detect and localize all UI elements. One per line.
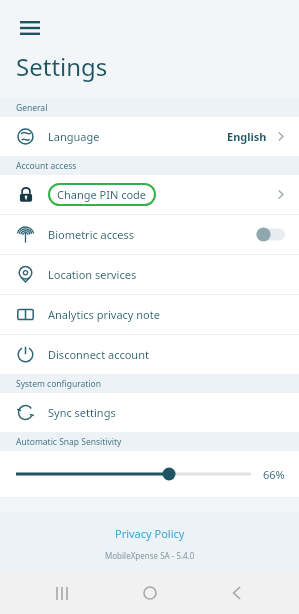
staticText: 66% xyxy=(263,467,285,482)
staticText: Change PIN code xyxy=(57,187,147,202)
button[interactable]: Back xyxy=(211,572,263,614)
button[interactable]: Sync settings xyxy=(0,393,299,432)
button[interactable]: Language xyxy=(0,117,299,156)
staticText: Settings xyxy=(16,50,108,83)
staticText: Language xyxy=(48,129,100,144)
staticText: Location services xyxy=(48,267,137,282)
staticText: General xyxy=(16,102,48,114)
staticText: System configuration xyxy=(16,378,101,390)
button[interactable]: Home xyxy=(124,572,176,614)
button[interactable]: Location services xyxy=(0,255,299,294)
button[interactable]: Analytics privacy note xyxy=(0,295,299,334)
button[interactable]: Open navigation menu xyxy=(14,12,46,44)
staticText: English xyxy=(227,129,267,144)
button[interactable]: Privacy Policy xyxy=(105,523,195,544)
button[interactable]: Snap sensitivity slider xyxy=(16,463,251,485)
button[interactable]: Change PIN code xyxy=(0,175,299,214)
staticText: Privacy Policy xyxy=(115,526,185,541)
button[interactable]: Disconnect account xyxy=(0,335,299,374)
staticText: Disconnect account xyxy=(48,347,149,362)
button[interactable]: Biometric access xyxy=(0,215,299,254)
staticText: Biometric access xyxy=(48,227,135,242)
staticText: Automatic Snap Sensitivity xyxy=(16,436,122,448)
staticText: MobileXpense SA - 5.4.0 xyxy=(105,550,195,561)
staticText: Sync settings xyxy=(48,405,116,420)
button[interactable]: Recent apps xyxy=(36,572,88,614)
staticText: Analytics privacy note xyxy=(48,307,160,322)
staticText: Account access xyxy=(16,160,77,172)
